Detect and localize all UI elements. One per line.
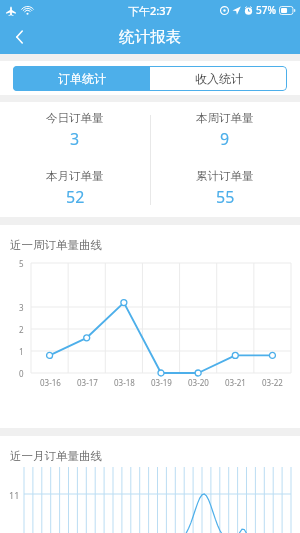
- staticText: 1: [19, 346, 24, 357]
- staticText: 3: [70, 128, 80, 150]
- staticText: 03-20: [188, 377, 209, 388]
- button[interactable]: 累计订单量: [150, 159, 300, 217]
- staticText: 9: [220, 128, 230, 150]
- staticText: 03-21: [225, 377, 246, 388]
- button[interactable]: 本周订单量: [150, 102, 300, 159]
- staticText: 统计报表: [119, 27, 181, 47]
- staticText: 55: [216, 186, 235, 208]
- staticText: 03-17: [77, 377, 98, 388]
- staticText: 03-22: [262, 377, 283, 388]
- staticText: 本周订单量: [196, 111, 254, 125]
- button[interactable]: 订单统计: [13, 66, 150, 91]
- staticText: 本月订单量: [46, 169, 104, 183]
- staticText: 订单统计: [58, 71, 106, 86]
- staticText: 0: [19, 368, 24, 379]
- button[interactable]: 本月订单量: [0, 159, 150, 217]
- staticText: 累计订单量: [196, 169, 254, 183]
- staticText: 下午2:37: [128, 3, 172, 18]
- button[interactable]: Back: [0, 20, 40, 54]
- button[interactable]: 收入统计: [150, 66, 287, 91]
- staticText: 03-19: [151, 377, 172, 388]
- button[interactable]: 今日订单量: [0, 102, 150, 159]
- staticText: 收入统计: [195, 71, 243, 86]
- staticText: 近一月订单量曲线: [10, 449, 102, 463]
- staticText: 5: [19, 258, 24, 269]
- staticText: 2: [19, 324, 24, 335]
- staticText: 57%: [256, 3, 276, 17]
- staticText: 52: [66, 186, 85, 208]
- staticText: 11: [9, 489, 20, 501]
- staticText: 3: [19, 302, 24, 313]
- staticText: 03-18: [114, 377, 135, 388]
- staticText: 近一周订单量曲线: [10, 238, 102, 252]
- staticText: 今日订单量: [46, 111, 104, 125]
- staticText: 03-16: [40, 377, 61, 388]
